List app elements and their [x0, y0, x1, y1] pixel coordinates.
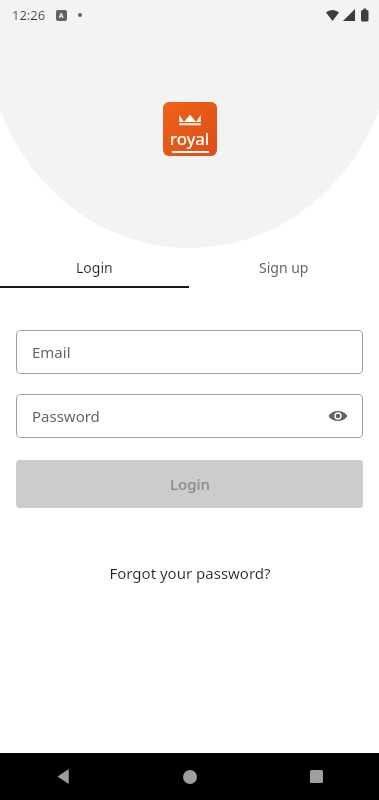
staticText: Sign up: [259, 258, 309, 277]
staticText: Login: [170, 474, 210, 494]
button[interactable]: Sign up: [189, 248, 379, 286]
staticText: royal: [170, 127, 210, 150]
staticText: Forgot your password?: [109, 563, 271, 583]
button[interactable]: Password: [16, 394, 363, 438]
staticText: 12:26: [12, 6, 46, 24]
button[interactable]: Show password: [323, 401, 353, 431]
button[interactable]: Email: [16, 330, 363, 374]
button[interactable]: Forgot your password?: [0, 563, 379, 583]
button[interactable]: Recents: [253, 753, 379, 800]
button[interactable]: Login: [16, 460, 363, 508]
button[interactable]: Back: [0, 753, 127, 800]
button[interactable]: Home: [127, 753, 253, 800]
staticText: Password: [32, 406, 100, 426]
staticText: Email: [32, 342, 71, 362]
staticText: A: [59, 11, 64, 21]
staticText: Login: [76, 258, 113, 277]
button[interactable]: Login: [0, 248, 189, 286]
